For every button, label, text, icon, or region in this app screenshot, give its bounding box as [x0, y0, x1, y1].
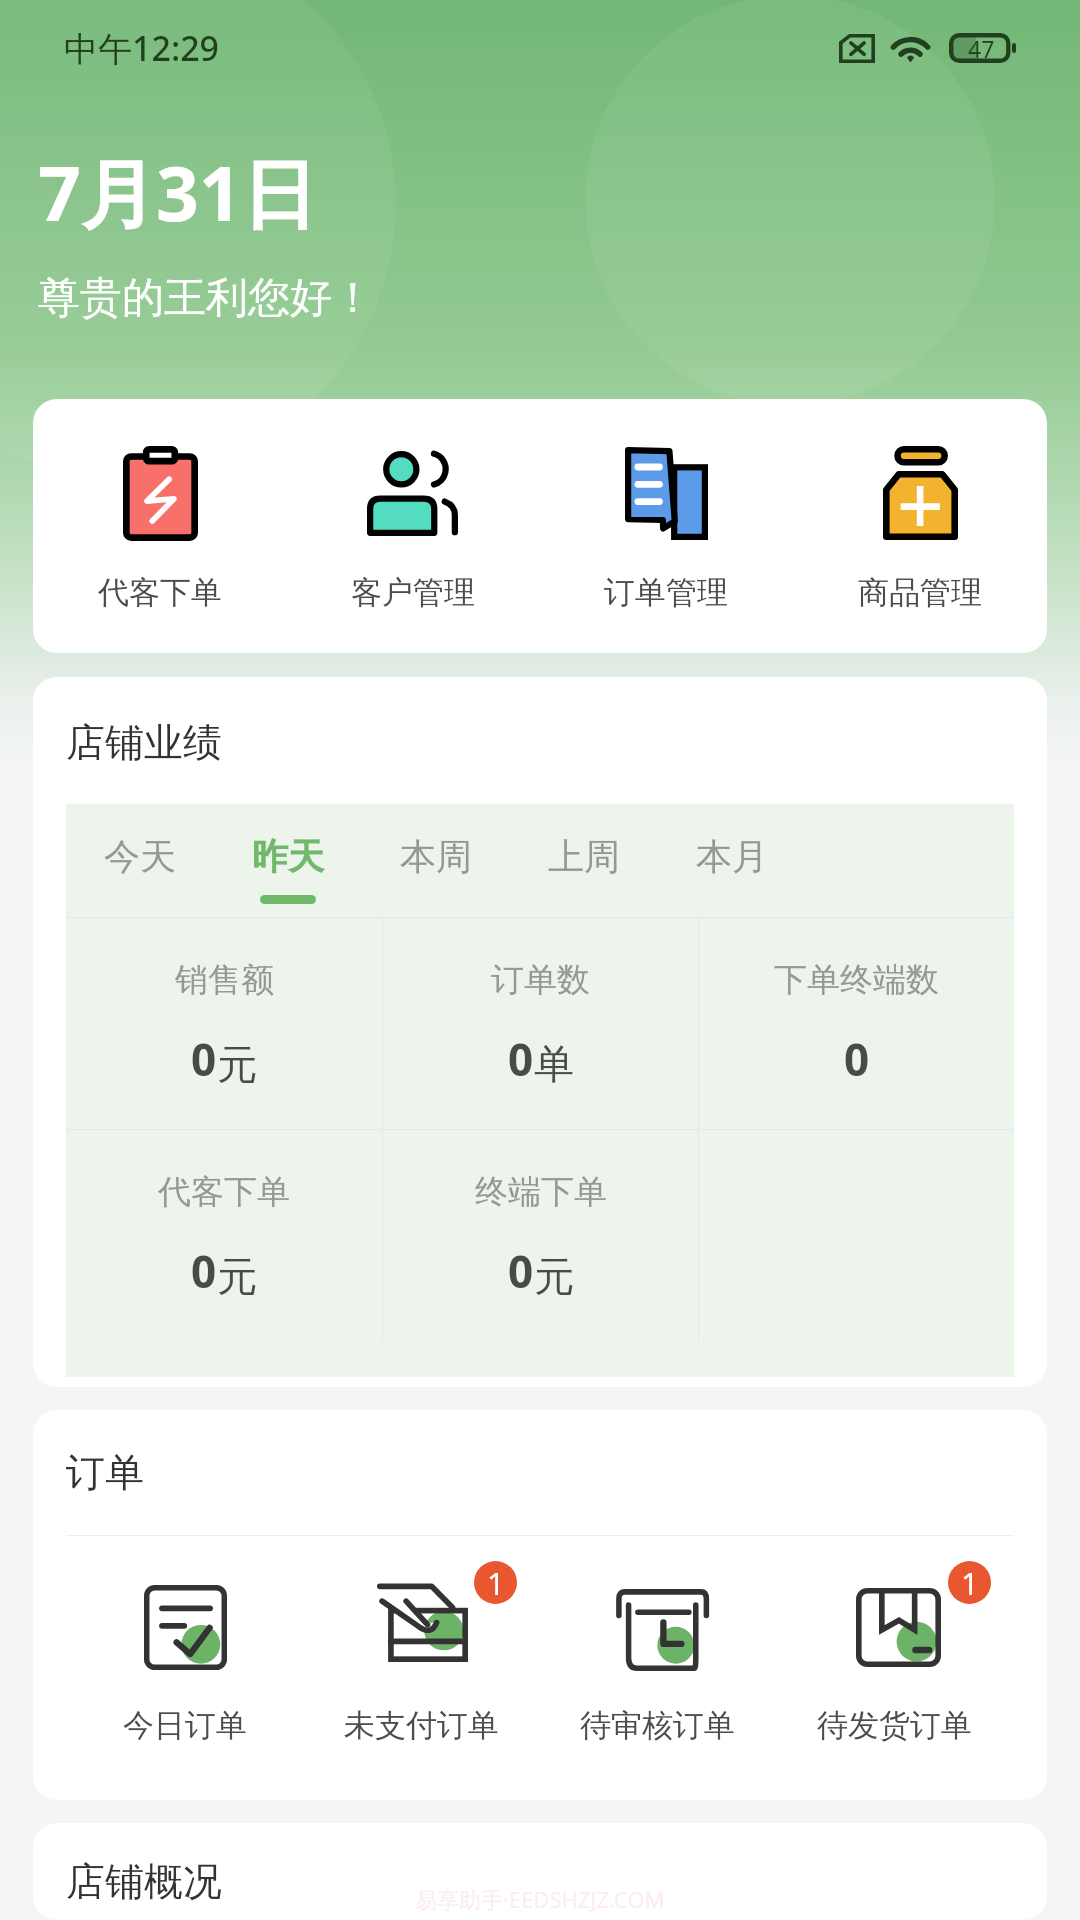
- staticText: 元: [534, 1251, 574, 1301]
- staticText: 待审核订单: [580, 1706, 735, 1745]
- staticText: 易享助手·EEDSHZJZ.COM: [415, 1884, 665, 1914]
- button[interactable]: 销售额: [66, 918, 382, 1129]
- staticText: 0: [191, 1241, 217, 1301]
- button[interactable]: 今日订单: [67, 1536, 303, 1745]
- button[interactable]: 订单数: [383, 918, 698, 1129]
- other: No SIM card: [839, 34, 875, 63]
- staticText: 终端下单: [475, 1171, 607, 1213]
- staticText: 昨天: [252, 834, 324, 879]
- button[interactable]: 1: [303, 1536, 539, 1745]
- button[interactable]: 下单终端数: [699, 918, 1014, 1129]
- button[interactable]: 上周: [510, 804, 658, 917]
- button[interactable]: 待审核订单: [539, 1536, 776, 1745]
- button[interactable]: 本月: [658, 804, 806, 917]
- staticText: 单: [534, 1039, 574, 1089]
- staticText: 未支付订单: [344, 1706, 499, 1745]
- staticText: 元: [217, 1039, 257, 1089]
- staticText: 7月31日: [38, 141, 317, 243]
- staticText: 0: [844, 1029, 870, 1089]
- button[interactable]: 昨天: [214, 804, 362, 917]
- staticText: 订单: [66, 1448, 144, 1497]
- button[interactable]: 1: [776, 1536, 1013, 1745]
- staticText: 订单数: [491, 959, 590, 1001]
- other: Wi-Fi: [889, 33, 932, 63]
- staticText: 客户管理: [351, 573, 475, 612]
- staticText: 0: [508, 1029, 534, 1089]
- staticText: 1: [487, 1562, 505, 1604]
- staticText: 尊贵的王利您好！: [38, 272, 374, 325]
- staticText: 47: [968, 33, 995, 63]
- staticText: 销售额: [175, 959, 274, 1001]
- button[interactable]: 订单管理: [539, 399, 793, 653]
- staticText: 商品管理: [858, 573, 982, 612]
- staticText: 本月: [696, 834, 768, 879]
- staticText: 代客下单: [158, 1171, 290, 1213]
- staticText: 订单管理: [604, 573, 728, 612]
- button[interactable]: 店铺概况: [33, 1823, 1047, 1920]
- staticText: 店铺业绩: [66, 718, 222, 767]
- staticText: 店铺概况: [66, 1857, 222, 1906]
- staticText: 代客下单: [98, 573, 222, 612]
- button[interactable]: 终端下单: [383, 1130, 698, 1341]
- staticText: 1: [961, 1562, 979, 1604]
- staticText: 上周: [548, 834, 620, 879]
- button[interactable]: 代客下单: [66, 1130, 382, 1341]
- staticText: 今日订单: [123, 1706, 247, 1745]
- staticText: 0: [508, 1241, 534, 1301]
- button[interactable]: 商品管理: [793, 399, 1047, 653]
- button[interactable]: 客户管理: [286, 399, 539, 653]
- button[interactable]: 本周: [362, 804, 510, 917]
- staticText: 待发货订单: [817, 1706, 972, 1745]
- button[interactable]: 代客下单: [33, 399, 286, 653]
- button[interactable]: 今天: [66, 804, 214, 917]
- staticText: 本周: [400, 834, 472, 879]
- staticText: 今天: [104, 834, 176, 879]
- staticText: 0: [191, 1029, 217, 1089]
- staticText: 中午12:29: [64, 25, 220, 71]
- staticText: 下单终端数: [774, 959, 939, 1001]
- staticText: 元: [217, 1251, 257, 1301]
